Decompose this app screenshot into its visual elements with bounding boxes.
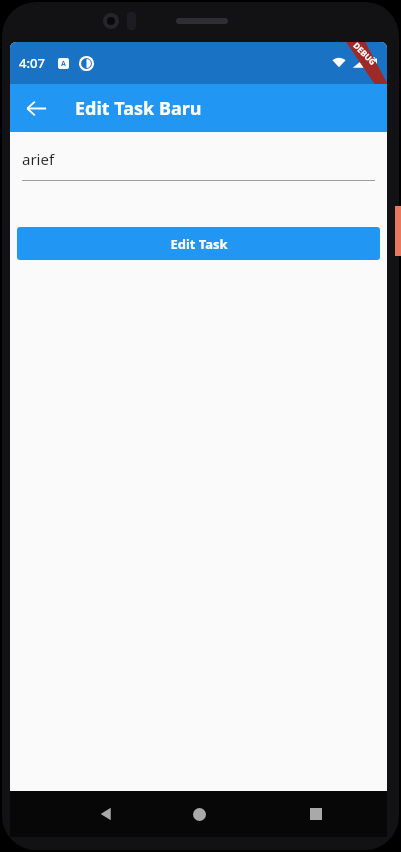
button[interactable]: Home: [175, 791, 223, 837]
button[interactable]: Back: [82, 791, 130, 837]
button[interactable]: arief: [22, 144, 375, 181]
staticText: 4:07: [19, 54, 45, 72]
button[interactable]: Back: [14, 86, 58, 130]
staticText: Edit Task Baru: [75, 96, 202, 121]
button[interactable]: Recent apps: [292, 791, 340, 837]
staticText: DEBUG: [351, 42, 379, 67]
staticText: Edit Task: [170, 235, 228, 253]
button[interactable]: Edit Task: [17, 227, 380, 260]
staticText: arief: [22, 149, 55, 169]
staticText: A: [61, 59, 66, 69]
